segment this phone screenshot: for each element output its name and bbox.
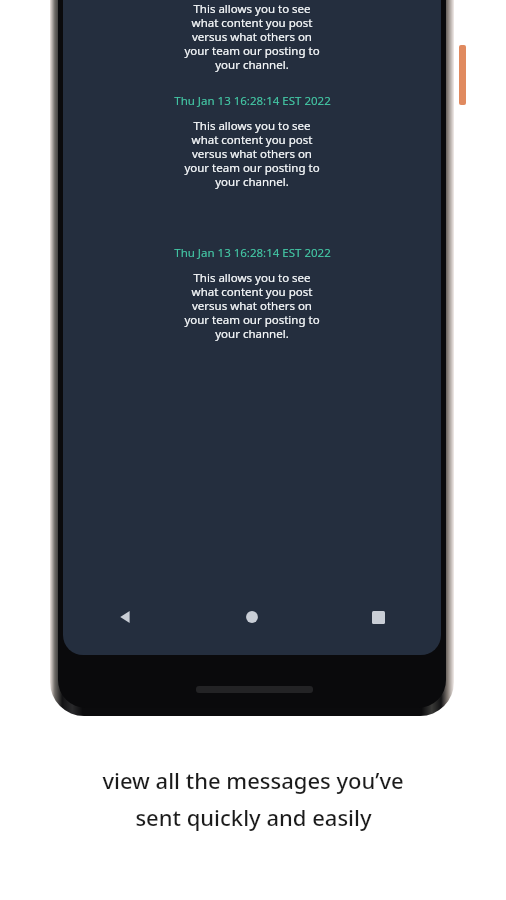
staticText: This allows you to see what content you … (184, 1, 320, 72)
button[interactable]: Back (63, 597, 189, 637)
button[interactable]: Thu Jan 13 16:28:14 EST 2022 (63, 93, 441, 189)
staticText: Thu Jan 13 16:28:14 EST 2022 (174, 93, 331, 109)
staticText: sent quickly and easily (135, 802, 372, 832)
button[interactable]: Home (189, 597, 315, 637)
other: Power button (459, 45, 466, 105)
button[interactable]: Thu Jan 13 16:28:14 EST 2022 (63, 245, 441, 341)
staticText: This allows you to see what content you … (184, 270, 320, 341)
button[interactable]: Recent apps (315, 597, 441, 637)
staticText: Thu Jan 13 16:28:14 EST 2022 (174, 245, 331, 261)
staticText: view all the messages you’ve (102, 765, 404, 795)
button[interactable]: Thu Jan 13 16:28:14 EST 2022 (63, 0, 441, 72)
staticText: This allows you to see what content you … (184, 118, 320, 189)
